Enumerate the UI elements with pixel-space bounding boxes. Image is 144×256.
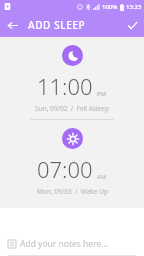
staticText: 100% xyxy=(102,3,118,11)
button[interactable]: Add your notes here... xyxy=(0,238,144,256)
staticText: PM xyxy=(97,90,107,98)
button[interactable]: 11:00 xyxy=(0,37,144,119)
staticText: AM xyxy=(97,173,107,181)
staticText: ADD SLEEP xyxy=(28,18,86,32)
staticText: 07:00 xyxy=(37,154,93,184)
button[interactable]: Save xyxy=(120,13,144,37)
staticText: Sun, 09/02 / Fell Asleep xyxy=(35,104,109,113)
staticText: 15:23 xyxy=(126,3,142,11)
staticText: 11:00 xyxy=(37,71,93,101)
staticText: Add your notes here... xyxy=(20,238,109,250)
staticText: Mon, 09/03 / Wake Up xyxy=(37,187,108,196)
button[interactable]: 07:00 xyxy=(0,120,144,202)
button[interactable]: Back xyxy=(0,13,24,37)
